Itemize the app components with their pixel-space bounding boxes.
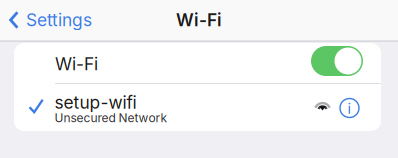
button[interactable]: Settings (0, 3, 102, 36)
staticText: Wi-Fi (176, 9, 222, 30)
staticText: i (347, 100, 351, 117)
staticText: Wi-Fi (55, 53, 98, 74)
button[interactable]: Wi-Fi (14, 43, 381, 83)
staticText: Unsecured Network (54, 111, 167, 125)
staticText: setup-wifi (54, 92, 136, 113)
staticText: Settings (26, 9, 92, 30)
button[interactable]: setup-wifi (14, 83, 381, 131)
